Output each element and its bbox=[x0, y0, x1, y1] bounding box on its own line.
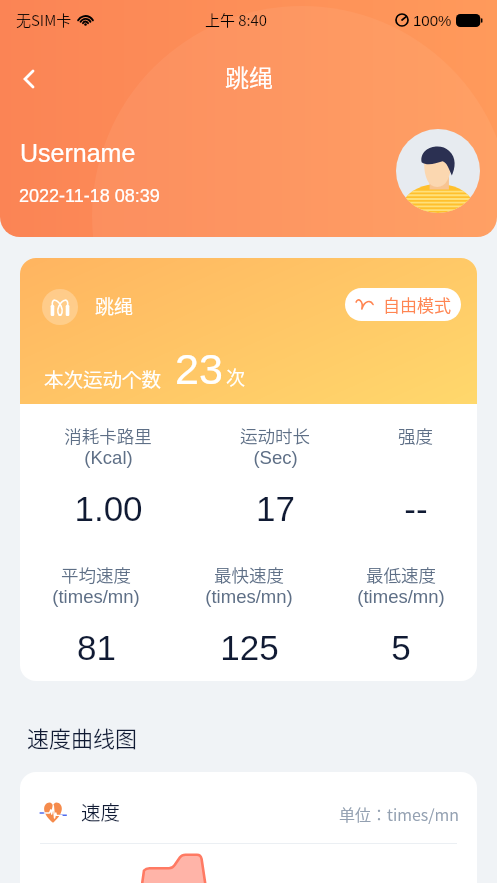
staticText: 1.00 bbox=[74, 489, 143, 528]
staticText: 最低速度 bbox=[366, 562, 436, 587]
staticText: 跳绳 bbox=[95, 292, 134, 320]
staticText: 消耗卡路里 bbox=[64, 423, 152, 448]
staticText: (times/mn) bbox=[357, 586, 445, 607]
staticText: 5 bbox=[391, 628, 411, 667]
staticText: 17 bbox=[256, 489, 295, 528]
staticText: 本次运动个数 bbox=[44, 364, 162, 392]
staticText: 上午 8:40 bbox=[205, 9, 268, 31]
staticText: (times/mn) bbox=[52, 586, 140, 607]
staticText: 自由模式 bbox=[383, 292, 451, 317]
staticText: 速度曲线图 bbox=[27, 721, 138, 753]
staticText: (Sec) bbox=[253, 447, 298, 468]
staticText: 无SIM卡 bbox=[16, 9, 72, 31]
staticText: 速度 bbox=[81, 797, 121, 825]
staticText: (times/mn) bbox=[205, 586, 293, 607]
staticText: 23 bbox=[175, 345, 223, 393]
staticText: 最快速度 bbox=[214, 562, 284, 587]
staticText: 运动时长 bbox=[240, 423, 310, 448]
staticText: 81 bbox=[77, 628, 116, 667]
staticText: -- bbox=[404, 489, 428, 528]
staticText: 单位：times/mn bbox=[339, 802, 459, 825]
staticText: 平均速度 bbox=[61, 562, 131, 587]
staticText: 跳绳 bbox=[225, 59, 273, 94]
staticText: 2022-11-18 08:39 bbox=[19, 186, 160, 206]
staticText: (Kcal) bbox=[84, 447, 133, 468]
staticText: 100% bbox=[413, 12, 452, 29]
button[interactable]: 自由模式 bbox=[345, 288, 461, 321]
staticText: 125 bbox=[220, 628, 279, 667]
button[interactable]: Back bbox=[7, 57, 51, 101]
staticText: Username bbox=[20, 139, 136, 167]
staticText: 次 bbox=[226, 363, 248, 391]
staticText: 强度 bbox=[398, 423, 433, 448]
